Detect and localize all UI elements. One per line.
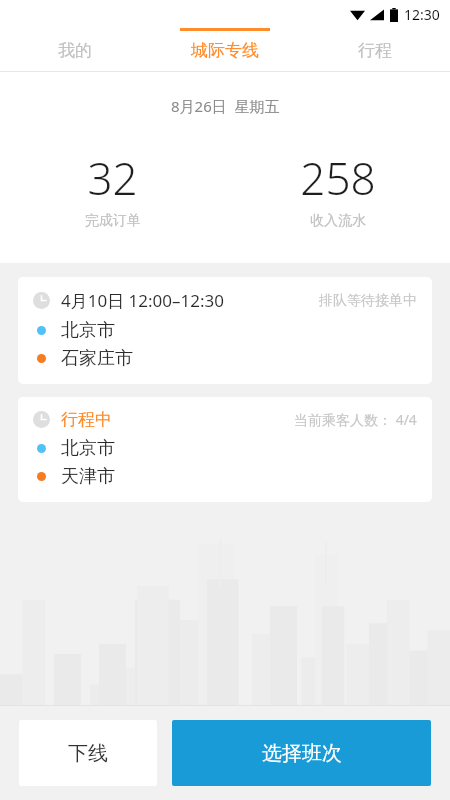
button[interactable]: 行程	[300, 28, 450, 72]
staticText: 12:30	[404, 5, 440, 24]
button[interactable]: 我的	[0, 28, 150, 72]
staticText: 下线	[68, 741, 108, 766]
staticText: 8月26日 星期五	[171, 96, 280, 116]
staticText: 北京市	[61, 437, 115, 460]
staticText: 排队等待接单中	[319, 292, 417, 310]
staticText: 258	[300, 148, 376, 208]
staticText: 北京市	[61, 319, 115, 342]
staticText: 4月10日 12:00–12:30	[61, 289, 224, 312]
button[interactable]: 选择班次	[172, 720, 431, 786]
staticText: 收入流水	[310, 212, 366, 230]
button[interactable]: 城际专线	[150, 28, 300, 72]
staticText: 行程中	[61, 409, 112, 430]
staticText: 完成订单	[85, 212, 141, 230]
staticText: 城际专线	[191, 40, 259, 61]
staticText: 石家庄市	[61, 347, 133, 370]
staticText: 天津市	[61, 465, 115, 488]
staticText: 当前乘客人数： 4/4	[294, 410, 417, 429]
staticText: 我的	[58, 40, 92, 61]
button[interactable]: 4月10日 12:00–12:30	[18, 277, 432, 384]
staticText: 选择班次	[262, 741, 342, 766]
button[interactable]: 行程中	[18, 397, 432, 502]
staticText: 32	[87, 148, 138, 208]
button[interactable]: 下线	[19, 720, 157, 786]
staticText: 行程	[358, 40, 392, 61]
